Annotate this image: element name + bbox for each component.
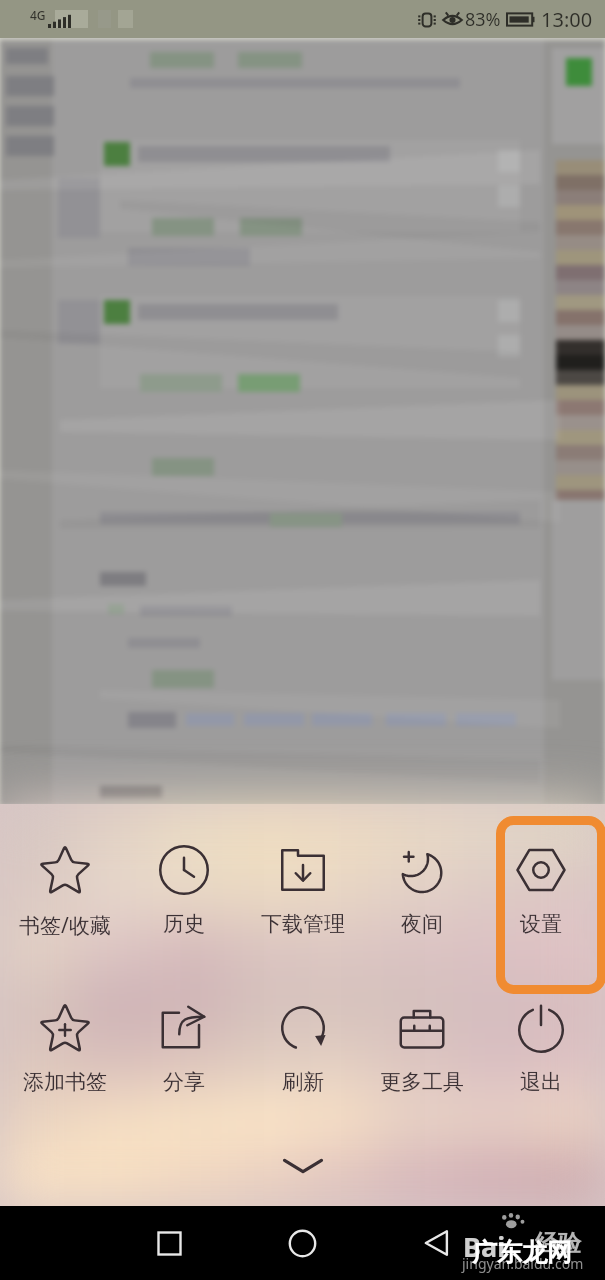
button[interactable]: 书签/收藏 [5,816,124,974]
button[interactable]: Close menu [263,1140,343,1192]
button[interactable]: 更多工具 [362,974,481,1132]
staticText: 书签/收藏 [19,911,111,940]
button[interactable]: 下载管理 [243,816,362,974]
staticText: 更多工具 [380,1069,464,1095]
button[interactable]: 退出 [481,974,600,1132]
staticText: jingyan.baidu.com [462,1254,584,1273]
staticText: Bai [463,1228,506,1265]
staticText: 广东龙网 [472,1237,572,1268]
button[interactable]: Recents [133,1206,205,1280]
button[interactable]: 添加书签 [5,974,124,1132]
staticText: 添加书签 [23,1069,107,1095]
staticText: 刷新 [282,1069,324,1095]
button[interactable]: 分享 [124,974,243,1132]
staticText: 夜间 [401,911,443,937]
button[interactable]: 刷新 [243,974,362,1132]
staticText: 退出 [520,1069,562,1095]
button[interactable]: Back [401,1206,473,1280]
staticText: 13:00 [541,6,593,33]
staticText: 历史 [163,911,205,937]
button[interactable]: 设置 [481,816,600,974]
button[interactable]: Home [266,1206,338,1280]
staticText: 4G [30,7,46,23]
staticText: 设置 [520,911,562,937]
staticText: 经验 [535,1229,581,1258]
staticText: 下载管理 [261,911,345,937]
staticText: 83% [465,7,501,32]
button[interactable]: 夜间 [362,816,481,974]
staticText: 分享 [163,1069,205,1095]
button[interactable]: 历史 [124,816,243,974]
